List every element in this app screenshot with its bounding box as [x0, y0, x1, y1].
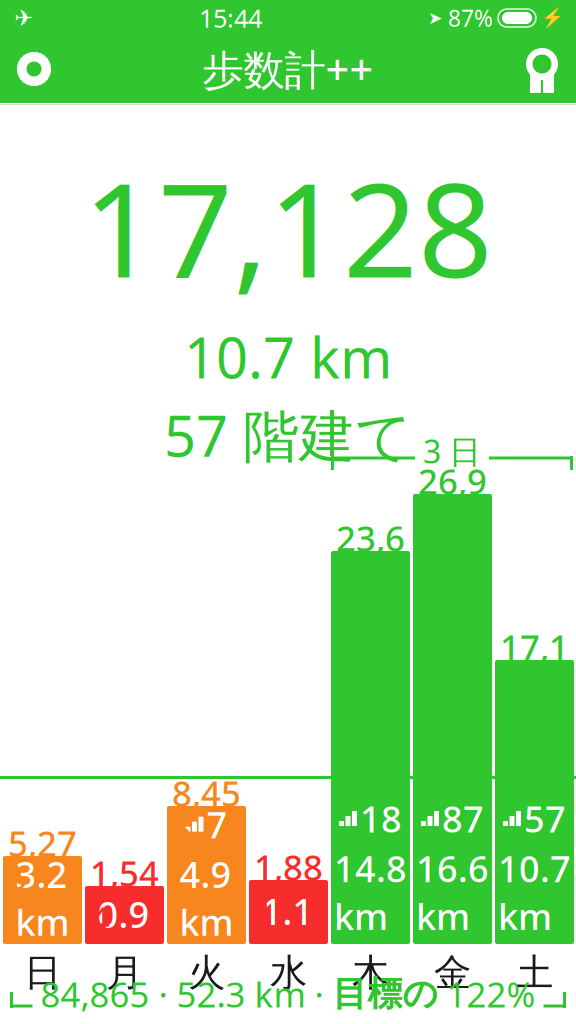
staticText: 8,452 [172, 770, 241, 862]
staticText: 84,865 · 52.3 km · [40, 971, 332, 1017]
staticText: 26,987 [418, 458, 487, 550]
staticText: ➤ [428, 8, 443, 28]
staticText: 57 階建て [164, 398, 412, 472]
staticText: 23,600 [336, 515, 405, 607]
button[interactable]: Achievements [508, 41, 576, 97]
staticText: 3 日 [423, 430, 481, 472]
staticText: 木 [352, 950, 389, 996]
staticText: 18 [360, 795, 402, 842]
staticText: 目標の [332, 973, 437, 1015]
button[interactable]: Settings [0, 41, 68, 97]
staticText: 7 [206, 800, 227, 848]
staticText: 87% [448, 3, 493, 33]
staticText: 10.7 km [498, 844, 571, 940]
staticText: 3.2 km [15, 850, 69, 946]
staticText: 87 [442, 795, 484, 842]
staticText: 5 [124, 840, 145, 888]
staticText: 5,273 [8, 820, 77, 912]
staticText: 1,881 [254, 844, 323, 936]
staticText: 1,544 [90, 850, 159, 942]
staticText: 10.7 km [184, 319, 392, 394]
staticText: 1.1 km [261, 887, 315, 983]
staticText: 15:44 [199, 1, 262, 35]
staticText: 火 [188, 950, 225, 996]
staticText: 122% [437, 971, 535, 1017]
staticText: 水 [270, 950, 307, 996]
staticText: 17,128 [83, 140, 493, 313]
staticText: 17,128 [500, 624, 569, 716]
staticText: 歩数計++ [202, 42, 373, 96]
staticText: 0.9 km [97, 890, 151, 986]
staticText: 日 [24, 950, 61, 996]
staticText: 月 [106, 950, 143, 996]
staticText: 14.8 km [334, 844, 407, 940]
staticText: 8 [288, 837, 309, 885]
staticText: 57 [524, 795, 566, 842]
staticText: ⚡ [541, 7, 564, 29]
staticText: ✈ [14, 5, 33, 31]
staticText: 土 [516, 950, 553, 996]
staticText: 金 [434, 950, 471, 996]
staticText: 16.6 km [416, 844, 489, 940]
staticText: 4.9 km [179, 850, 233, 946]
